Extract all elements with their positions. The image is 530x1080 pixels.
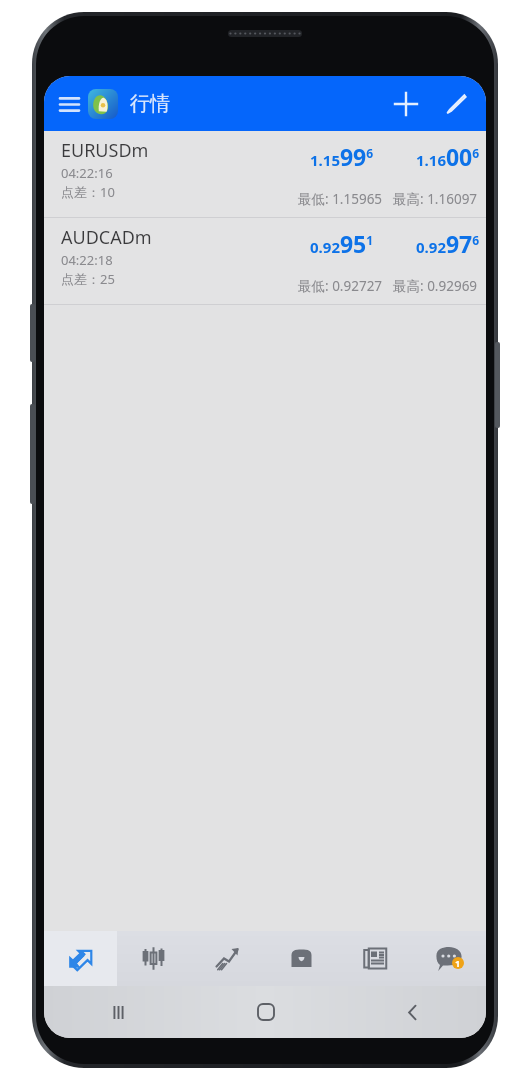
staticText: 最高: 1.16097 (393, 190, 478, 208)
staticText: 最低: 1.15965 (298, 190, 383, 208)
staticText: 0.92951 (310, 228, 374, 259)
button[interactable]: Charts (117, 931, 190, 986)
button[interactable]: Home (192, 986, 339, 1038)
button[interactable]: Back (339, 986, 486, 1038)
button[interactable]: Edit (434, 82, 478, 126)
button[interactable]: Quotes (44, 931, 117, 986)
staticText: 0.92976 (416, 228, 480, 259)
button[interactable]: Add symbol (384, 82, 428, 126)
button[interactable]: Trade (190, 931, 264, 986)
staticText: 最高: 0.92969 (393, 277, 478, 295)
staticText: 04:22:16 (61, 164, 113, 182)
staticText: 最低: 0.92727 (298, 277, 383, 295)
staticText: 1 (455, 957, 461, 969)
button[interactable]: EURUSDm (44, 131, 486, 217)
staticText: EURUSDm (61, 138, 149, 163)
button[interactable]: AUDCADm (44, 218, 486, 304)
button[interactable]: History (264, 931, 338, 986)
button[interactable]: Recents (44, 986, 192, 1038)
staticText: 行情 (130, 91, 170, 116)
staticText: 点差：10 (61, 183, 115, 201)
button[interactable]: News (338, 931, 412, 986)
staticText: AUDCADm (61, 225, 152, 250)
button[interactable]: Menu (52, 87, 86, 121)
staticText: 点差：25 (61, 270, 115, 288)
button[interactable]: Chat (412, 931, 486, 986)
staticText: 1.15996 (310, 141, 374, 172)
staticText: 1.16006 (416, 141, 480, 172)
staticText: 04:22:18 (61, 251, 113, 269)
